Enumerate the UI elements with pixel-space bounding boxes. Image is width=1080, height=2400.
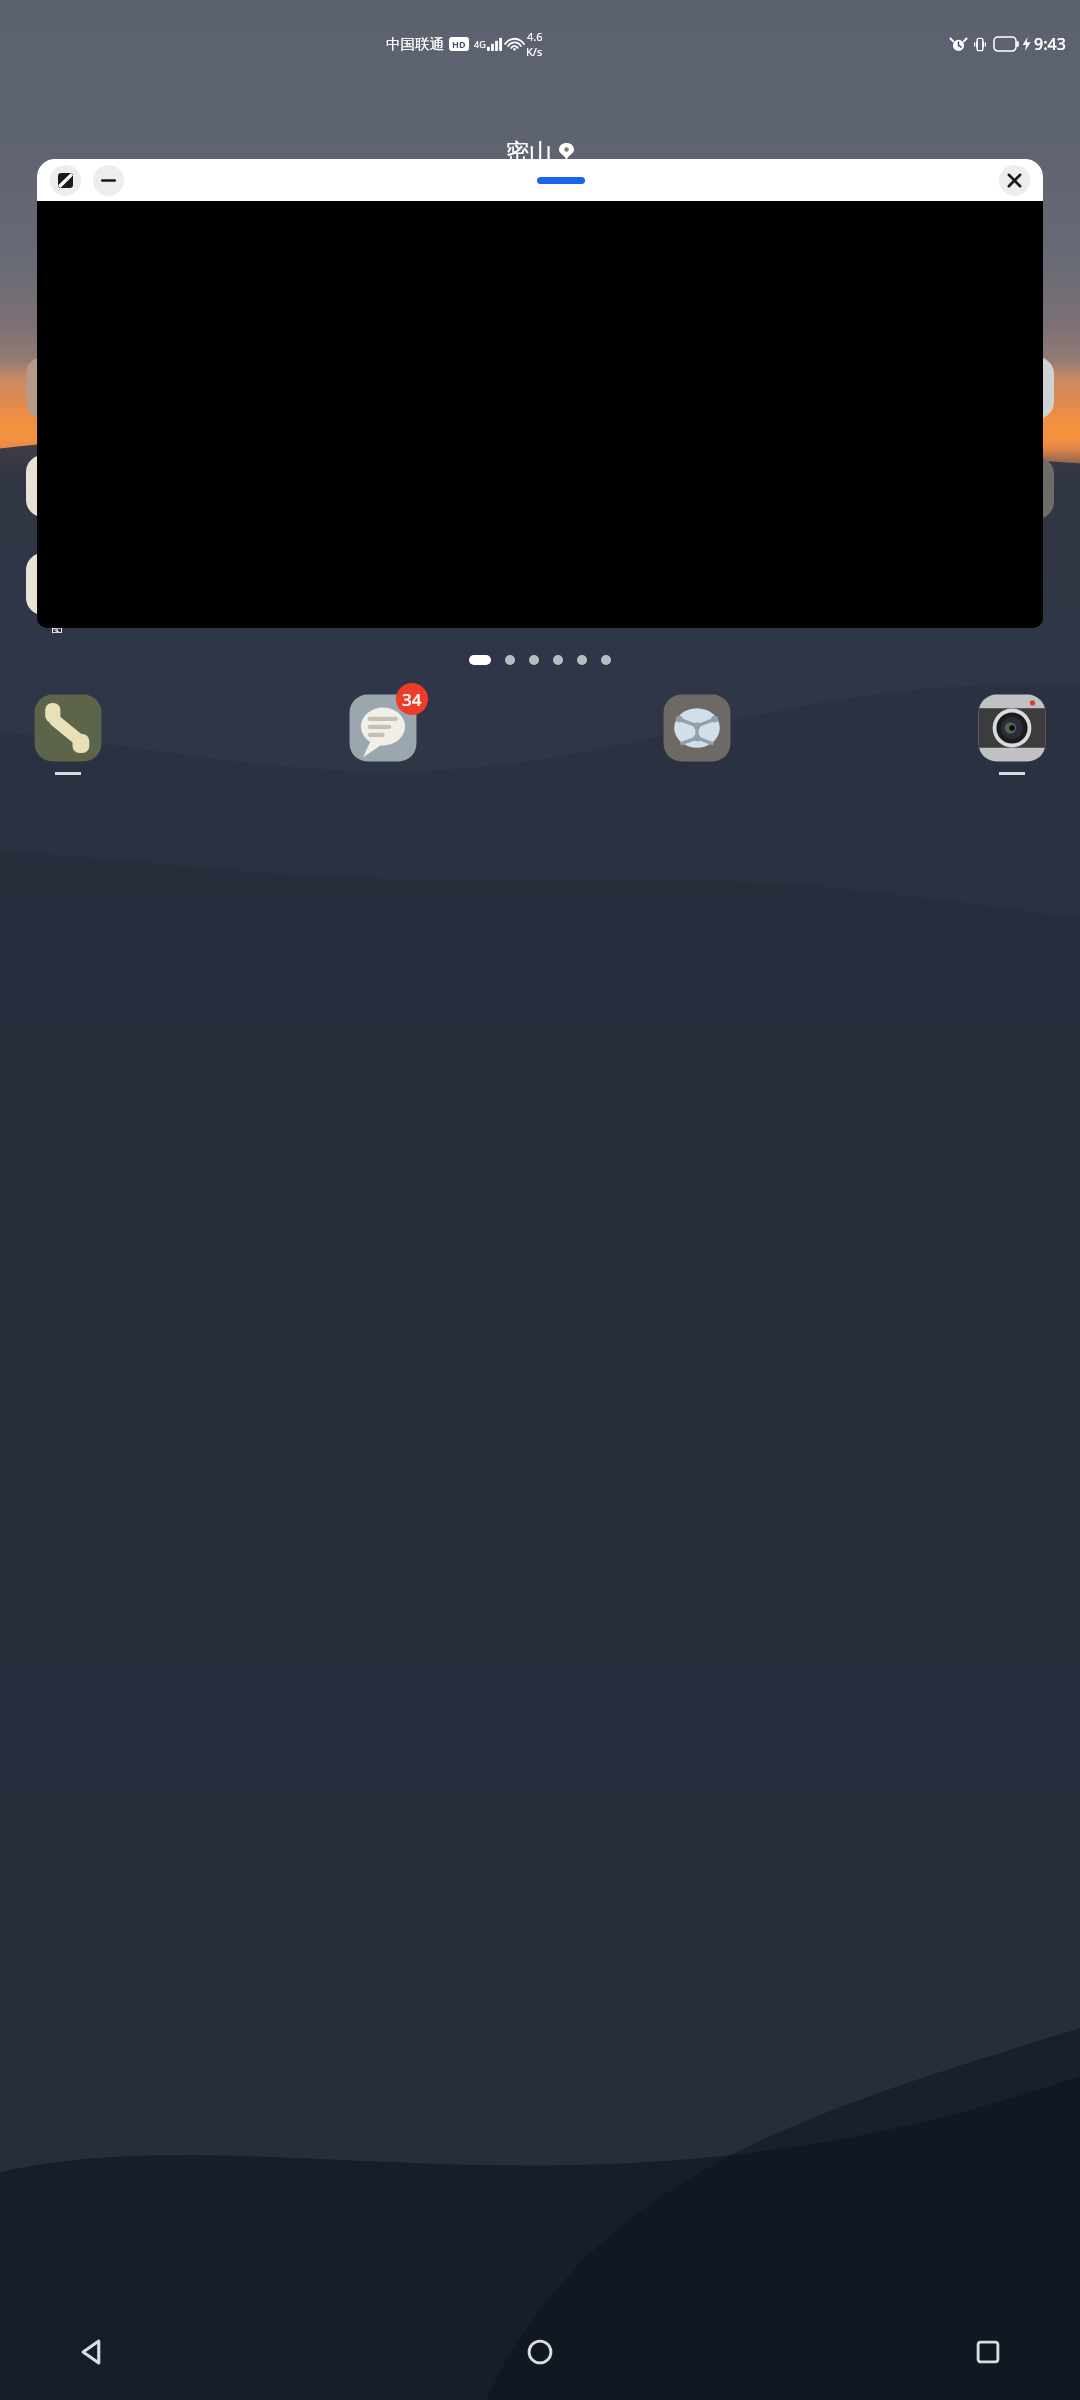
staticText: 9:43 — [1034, 33, 1066, 55]
staticText: HD — [452, 38, 466, 50]
staticText: 34 — [402, 688, 422, 711]
button[interactable]: Back — [54, 2314, 130, 2390]
staticText: 9:43 — [446, 173, 634, 304]
button[interactable]: 华 — [26, 357, 88, 419]
button[interactable]: Phone — [30, 690, 106, 766]
button[interactable]: Drag handle — [537, 177, 585, 184]
button[interactable]: App — [992, 457, 1054, 519]
button[interactable]: Browser — [659, 690, 735, 766]
button[interactable]: Close — [999, 165, 1030, 196]
button[interactable]: 图 — [26, 553, 88, 615]
staticText: 密山 — [506, 138, 552, 167]
staticText: 4.6 — [527, 29, 543, 44]
staticText: K/s — [526, 44, 543, 59]
staticText: 中国联通 — [386, 35, 444, 53]
button[interactable]: App — [992, 357, 1054, 419]
button[interactable]: Split screen — [50, 165, 81, 196]
button[interactable]: Messages — [345, 690, 421, 766]
staticText: 4G — [474, 38, 486, 50]
button[interactable]: Home — [502, 2314, 578, 2390]
button[interactable]: 应 — [26, 455, 88, 517]
button[interactable]: Camera — [974, 690, 1050, 766]
button[interactable]: Minimise — [93, 165, 124, 196]
button[interactable]: Recents — [950, 2314, 1026, 2390]
staticText: 图 — [51, 620, 63, 635]
